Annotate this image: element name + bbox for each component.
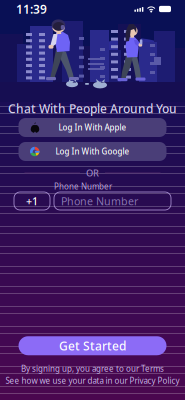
button[interactable]: Log In With Google xyxy=(18,142,166,161)
staticText: Phone Number xyxy=(61,194,138,208)
staticText: Chat With People Around You xyxy=(8,100,177,116)
staticText: +1 xyxy=(26,194,38,208)
staticText: Get Started xyxy=(59,338,126,354)
button[interactable]: Log In With Apple xyxy=(18,118,166,137)
staticText: 11:39 xyxy=(16,1,47,17)
staticText: Log In With Google xyxy=(55,146,129,157)
button[interactable]: Get Started xyxy=(18,336,166,355)
staticText: Phone Number xyxy=(54,181,112,192)
staticText: Log In With Apple xyxy=(58,122,126,133)
staticText: By signing up, you agree to our Terms xyxy=(21,363,164,374)
staticText: See how we use your data in our Privacy … xyxy=(5,375,179,386)
staticText: OR xyxy=(86,167,99,179)
